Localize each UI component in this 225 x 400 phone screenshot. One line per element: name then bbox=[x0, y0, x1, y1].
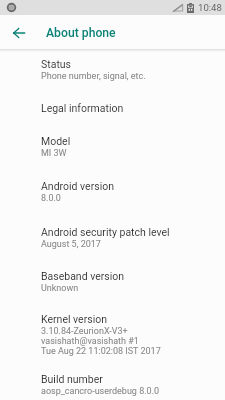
staticText: aosp_cancro-userdebug 8.0.0 bbox=[41, 386, 160, 397]
button[interactable]: Android version bbox=[0, 180, 225, 215]
staticText: Kernel version bbox=[41, 313, 108, 325]
staticText: 10:48 bbox=[198, 2, 222, 13]
staticText: Phone number, signal, etc. bbox=[41, 71, 146, 82]
button[interactable]: Android security patch level bbox=[0, 226, 225, 261]
staticText: Model bbox=[41, 135, 71, 147]
staticText: 8.0.0 bbox=[41, 193, 61, 204]
staticText: August 5, 2017 bbox=[41, 239, 101, 250]
staticText: Baseband version bbox=[41, 270, 125, 282]
staticText: About phone bbox=[46, 26, 116, 40]
staticText: Unknown bbox=[41, 283, 79, 294]
staticText: Legal information bbox=[41, 102, 124, 114]
staticText: 3.10.84-ZeurionX-V3+ vasishath@vasishath… bbox=[41, 326, 161, 356]
staticText: Android version bbox=[41, 180, 114, 192]
staticText: Build number bbox=[41, 373, 103, 385]
button[interactable]: Kernel version bbox=[0, 313, 225, 368]
button[interactable]: Status bbox=[0, 58, 225, 93]
staticText: MI 3W bbox=[41, 148, 67, 159]
button[interactable]: Baseband version bbox=[0, 270, 225, 305]
button[interactable]: Back bbox=[0, 15, 37, 50]
button[interactable]: Model bbox=[0, 135, 225, 170]
staticText: Status bbox=[41, 58, 72, 70]
button[interactable]: Legal information bbox=[0, 102, 225, 126]
button[interactable]: Build number bbox=[0, 373, 225, 400]
staticText: Android security patch level bbox=[41, 226, 170, 238]
